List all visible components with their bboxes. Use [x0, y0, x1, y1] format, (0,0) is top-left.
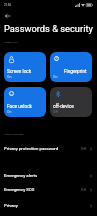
button[interactable]: Face unlock — [4, 87, 46, 117]
button[interactable]: off-device — [50, 87, 92, 117]
staticText: Fingerprint — [64, 69, 87, 75]
button[interactable]: Privacy — [0, 199, 97, 212]
staticText: On — [53, 75, 58, 79]
staticText: Privacy protection password — [4, 146, 59, 151]
staticText: Privacy — [4, 203, 18, 208]
staticText: Emergency SOS — [4, 187, 35, 192]
button[interactable]: Screen lock — [4, 52, 46, 82]
staticText: off-device — [53, 104, 74, 110]
staticText: Off — [81, 188, 86, 192]
staticText: SCREEN LOCK — [4, 41, 18, 43]
staticText: Screen lock — [7, 69, 32, 75]
staticText: Off — [53, 110, 58, 114]
button[interactable]: Back — [1, 9, 14, 22]
button[interactable]: Privacy protection password — [0, 142, 97, 155]
button[interactable]: Emergency alerts — [0, 169, 97, 182]
staticText: OTHER PASSWORDS — [4, 133, 24, 135]
staticText: Emergency alerts — [4, 173, 38, 178]
staticText: On — [7, 75, 12, 79]
staticText: On — [7, 110, 12, 114]
staticText: 21:36 — [4, 3, 11, 6]
staticText: Face unlock — [7, 104, 32, 110]
button[interactable]: Emergency SOS — [0, 183, 97, 196]
button[interactable]: Fingerprint — [50, 52, 92, 82]
staticText: Off — [81, 147, 86, 151]
staticText: Passwords & security — [4, 23, 93, 34]
